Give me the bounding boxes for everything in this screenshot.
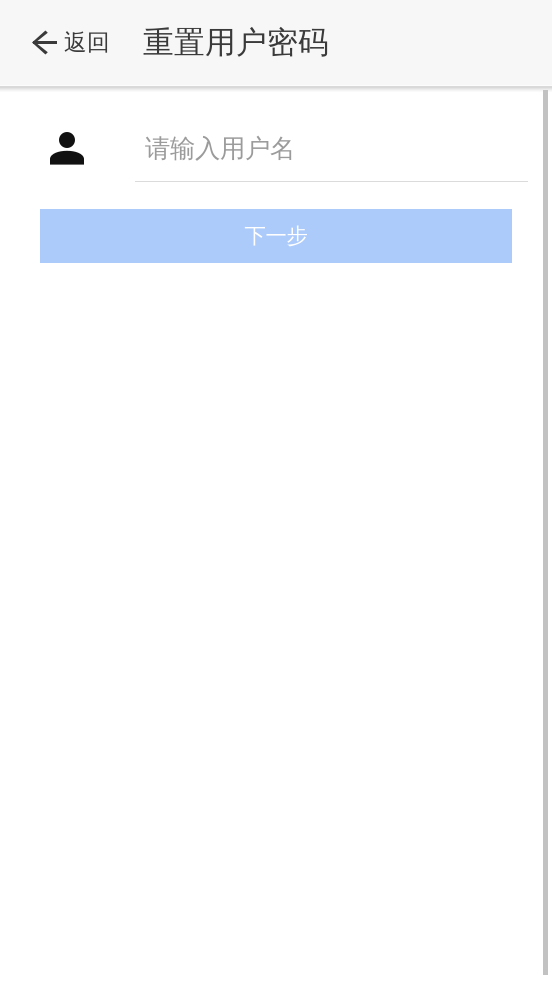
staticText: 请输入用户名	[145, 133, 295, 164]
button[interactable]: 下一步	[40, 209, 512, 263]
button[interactable]: 请输入用户名	[0, 132, 552, 165]
staticText: 返回	[64, 29, 110, 56]
staticText: 下一步	[244, 223, 307, 249]
button[interactable]: 返回	[0, 0, 124, 85]
staticText: 重置用户密码	[143, 24, 329, 61]
